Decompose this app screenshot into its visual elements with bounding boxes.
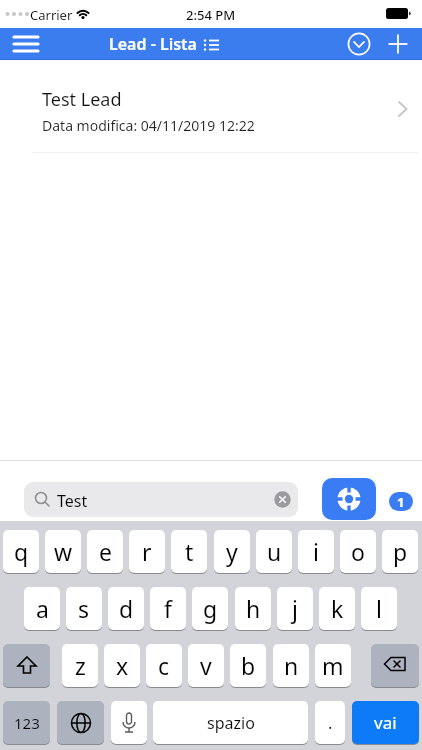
staticText: f: [164, 593, 172, 624]
staticText: y: [226, 536, 238, 567]
staticText: s: [78, 593, 90, 624]
button[interactable]: Test Lead: [0, 60, 422, 153]
button[interactable]: b: [230, 644, 266, 687]
button[interactable]: d: [108, 587, 144, 630]
staticText: 1: [397, 493, 405, 511]
staticText: q: [14, 536, 29, 567]
staticText: m: [322, 650, 344, 681]
staticText: i: [313, 536, 319, 567]
staticText: n: [284, 650, 299, 681]
staticText: spazio: [207, 712, 255, 734]
staticText: Carrier: [30, 6, 73, 24]
button[interactable]: r: [129, 530, 165, 573]
button[interactable]: f: [150, 587, 186, 630]
staticText: vai: [374, 711, 397, 734]
staticText: c: [158, 650, 170, 681]
staticText: x: [116, 650, 129, 681]
button[interactable]: [338, 28, 380, 60]
button[interactable]: a: [24, 587, 60, 630]
button[interactable]: k: [319, 587, 355, 630]
button[interactable]: 1: [389, 492, 413, 511]
button[interactable]: [57, 701, 104, 744]
staticText: b: [241, 650, 256, 681]
staticText: w: [54, 536, 73, 567]
staticText: z: [75, 650, 86, 681]
button[interactable]: y: [214, 530, 250, 573]
staticText: Data modifica: 04/11/2019 12:22: [42, 116, 255, 135]
button[interactable]: spazio: [153, 701, 308, 744]
staticText: o: [351, 536, 365, 567]
button[interactable]: m: [315, 644, 351, 687]
button[interactable]: l: [361, 587, 397, 630]
staticText: j: [292, 593, 298, 624]
button[interactable]: h: [235, 587, 271, 630]
button[interactable]: i: [298, 530, 334, 573]
button[interactable]: [371, 644, 419, 687]
button[interactable]: n: [273, 644, 309, 687]
button[interactable]: z: [62, 644, 98, 687]
staticText: r: [142, 536, 152, 567]
staticText: Lead - Lista: [109, 33, 197, 55]
button[interactable]: j: [277, 587, 313, 630]
staticText: h: [246, 593, 261, 624]
button[interactable]: o: [340, 530, 376, 573]
button[interactable]: w: [45, 530, 81, 573]
button[interactable]: u: [256, 530, 292, 573]
staticText: 2:54 PM: [186, 6, 236, 24]
button[interactable]: c: [146, 644, 182, 687]
button[interactable]: q: [3, 530, 39, 573]
button[interactable]: e: [87, 530, 123, 573]
staticText: g: [203, 593, 218, 624]
staticText: .: [328, 712, 333, 734]
button[interactable]: [3, 644, 50, 687]
staticText: a: [36, 593, 49, 624]
button[interactable]: [111, 701, 147, 744]
staticText: t: [185, 536, 194, 567]
staticText: 123: [14, 713, 40, 733]
staticText: k: [331, 593, 344, 624]
button[interactable]: p: [382, 530, 418, 573]
staticText: v: [200, 650, 212, 681]
button[interactable]: [6, 28, 50, 60]
button[interactable]: 123: [3, 701, 50, 744]
button[interactable]: s: [66, 587, 102, 630]
staticText: u: [267, 536, 282, 567]
staticText: Test Lead: [42, 87, 122, 112]
button[interactable]: x: [104, 644, 140, 687]
staticText: p: [393, 536, 408, 567]
staticText: e: [99, 536, 112, 567]
button[interactable]: vai: [352, 701, 419, 744]
button[interactable]: .: [315, 701, 345, 744]
button[interactable]: v: [188, 644, 224, 687]
button[interactable]: g: [192, 587, 228, 630]
staticText: d: [119, 593, 134, 624]
staticText: Test: [57, 490, 88, 512]
button[interactable]: t: [171, 530, 207, 573]
button[interactable]: Test: [24, 482, 298, 517]
button[interactable]: [378, 28, 418, 60]
button[interactable]: [322, 478, 376, 520]
staticText: l: [376, 593, 382, 624]
